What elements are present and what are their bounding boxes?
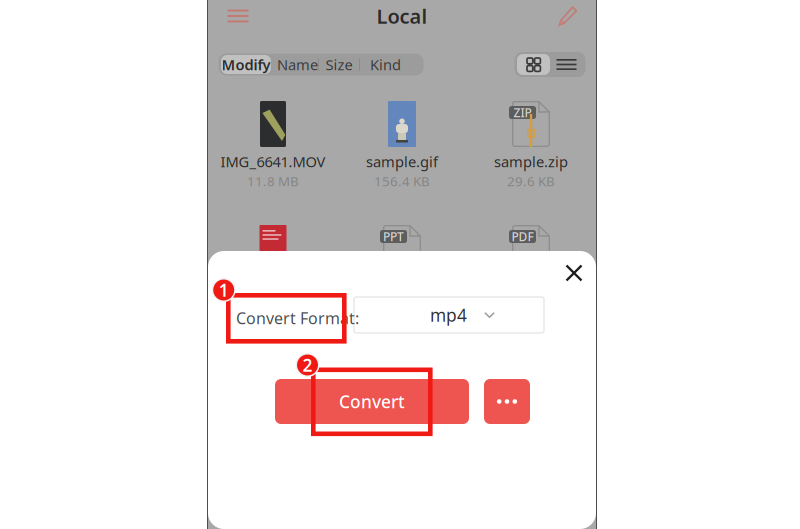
staticText: 29.6 KB	[507, 172, 555, 190]
staticText: Modify	[221, 55, 270, 74]
button[interactable]: Name	[277, 55, 318, 74]
button[interactable]: Modify	[221, 55, 271, 74]
button[interactable]: Kind	[360, 55, 411, 74]
button[interactable]: IMG_6641.MOV	[208, 101, 337, 188]
staticText: Name	[277, 55, 318, 74]
staticText: 156.4 KB	[374, 172, 430, 190]
staticText: Kind	[370, 55, 401, 74]
staticText: Convert	[339, 390, 405, 413]
button[interactable]: Close	[556, 257, 592, 289]
button[interactable]: Grid view	[517, 54, 550, 75]
staticText: ZIP	[513, 104, 531, 120]
button[interactable]: List view	[550, 54, 583, 75]
button[interactable]: mp4	[354, 297, 544, 333]
staticText: 11.8 MB	[247, 172, 299, 190]
button[interactable]: Convert	[275, 379, 469, 424]
button[interactable]: PPT	[337, 225, 466, 312]
staticText: mp4	[430, 303, 467, 326]
staticText: Size	[325, 55, 352, 74]
button[interactable]	[208, 225, 337, 312]
button[interactable]: Menu	[216, 0, 260, 32]
staticText: 2	[302, 353, 312, 376]
staticText: PDF	[511, 228, 533, 244]
button[interactable]: ZIP	[466, 101, 595, 188]
staticText: sample.gif	[366, 152, 438, 171]
staticText: IMG_6641.MOV	[220, 152, 325, 171]
staticText: Convert Format:	[236, 307, 359, 329]
button[interactable]: Edit	[548, 0, 588, 32]
button[interactable]: More options	[484, 379, 530, 424]
staticText: PPT	[383, 228, 404, 244]
button[interactable]: sample.gif	[337, 101, 466, 188]
staticText: sample.zip	[494, 152, 568, 171]
staticText: 1	[219, 278, 229, 301]
staticText: Local	[376, 3, 427, 29]
button[interactable]: Size	[319, 55, 359, 74]
button[interactable]: PDF	[466, 225, 595, 312]
